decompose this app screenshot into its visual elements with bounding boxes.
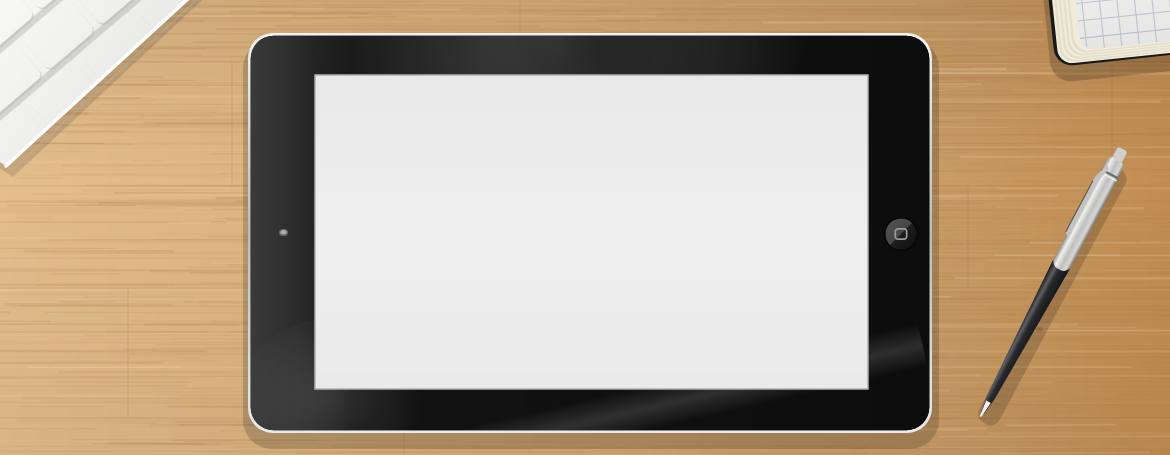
button[interactable]: Tablet with blank screen on a wooden des…	[0, 0, 1170, 455]
